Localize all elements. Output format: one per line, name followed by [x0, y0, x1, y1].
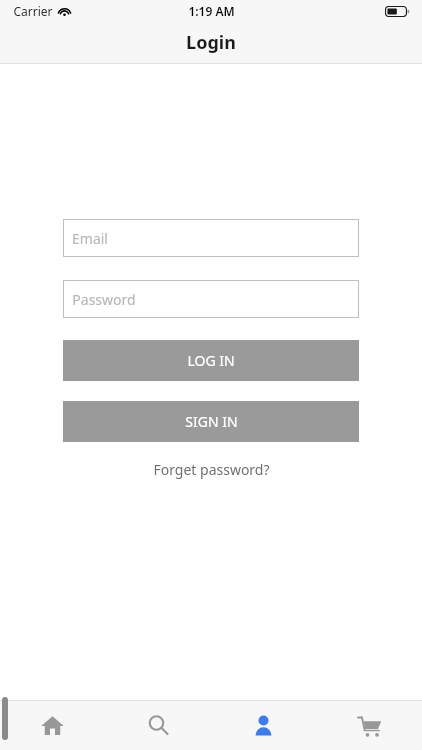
staticText: Email [72, 229, 108, 248]
button[interactable]: SIGN IN [63, 401, 359, 442]
staticText: Carrier [13, 3, 53, 19]
button[interactable]: Cart [317, 701, 422, 750]
button[interactable]: Search [106, 701, 211, 750]
staticText: Password [72, 290, 136, 309]
button[interactable]: Profile [211, 701, 316, 750]
button[interactable]: Email [63, 219, 359, 257]
staticText: Login [186, 30, 236, 55]
button[interactable]: Forget password? [63, 460, 359, 479]
staticText: SIGN IN [185, 412, 238, 431]
staticText: LOG IN [187, 351, 235, 370]
staticText: 1:19 AM [188, 3, 235, 19]
staticText: Forget password? [153, 460, 270, 479]
button[interactable]: Password [63, 280, 359, 318]
button[interactable]: Home [0, 701, 105, 750]
button[interactable]: LOG IN [63, 340, 359, 381]
